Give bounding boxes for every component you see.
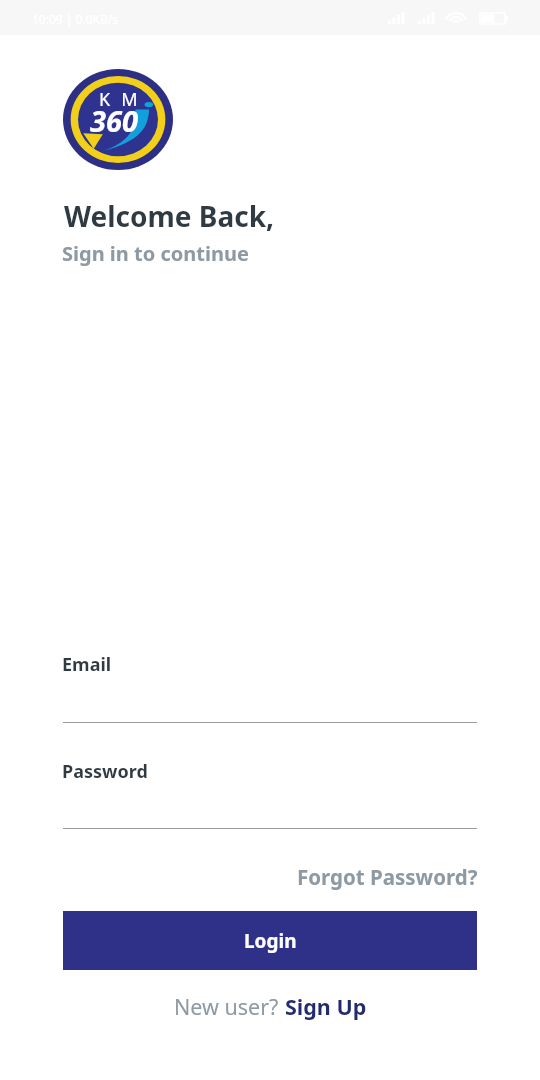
button[interactable]: Login	[63, 911, 477, 970]
staticText: Password	[62, 759, 148, 784]
staticText: Login	[244, 928, 297, 954]
staticText: Welcome Back,	[64, 197, 275, 235]
staticText: Sign in to continue	[62, 240, 249, 267]
button[interactable]: Forgot Password?	[285, 855, 490, 899]
staticText: 360	[90, 101, 138, 140]
staticText: Sign Up	[285, 992, 367, 1021]
staticText: Email	[62, 652, 112, 677]
staticText: KM	[99, 87, 149, 112]
staticText: Forgot Password?	[297, 863, 478, 891]
button[interactable]: Sign Up	[285, 992, 367, 1021]
staticText: New user?	[174, 992, 285, 1021]
